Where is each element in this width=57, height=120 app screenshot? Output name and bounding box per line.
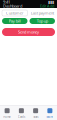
staticText: Edit: [40, 3, 46, 9]
button[interactable]: Pay bill: [2, 18, 27, 24]
staticText: Last payment: [31, 10, 54, 16]
button[interactable]: More: [43, 106, 57, 120]
staticText: Home: [3, 115, 11, 119]
staticText: 9:41: [3, 0, 10, 5]
staticText: Add: [47, 3, 54, 9]
button[interactable]: Home: [0, 106, 14, 120]
button[interactable]: Add: [47, 3, 54, 9]
staticText: Cards: [18, 115, 25, 119]
staticText: ▮▮▮: [48, 0, 54, 4]
staticText: Send money: [18, 29, 39, 35]
button[interactable]: Send money: [2, 28, 55, 36]
button[interactable]: Top up: [29, 18, 55, 24]
staticText: Dashboard: [3, 3, 22, 9]
button[interactable]: Stats: [28, 106, 43, 120]
staticText: [46, 3, 47, 9]
staticText: Pay bill: [9, 18, 21, 24]
button[interactable]: Edit: [40, 3, 46, 9]
staticText: Stats: [33, 115, 38, 119]
staticText: Customer: [6, 10, 24, 16]
button[interactable]: Customer: [2, 10, 27, 16]
button[interactable]: Cards: [14, 106, 28, 120]
staticText: More: [46, 115, 53, 119]
staticText: Top up: [37, 18, 48, 24]
